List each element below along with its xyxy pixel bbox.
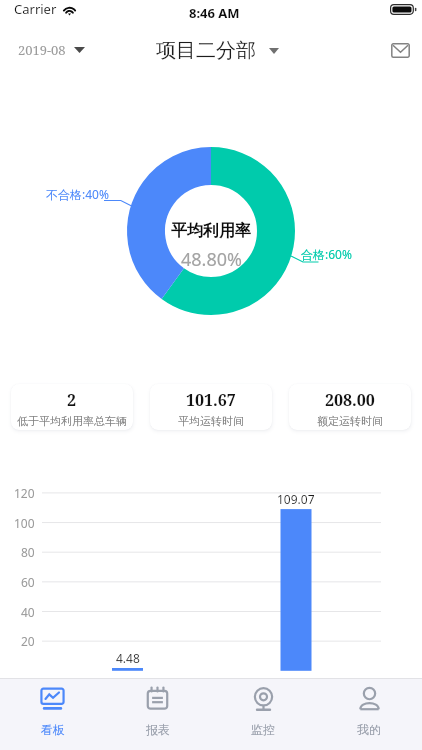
- staticText: 120: [14, 485, 35, 501]
- staticText: 8:46 AM: [189, 4, 240, 22]
- staticText: 额定运转时间: [317, 414, 383, 428]
- staticText: 101.67: [186, 389, 236, 411]
- staticText: 低于平均利用率总车辆: [17, 414, 127, 428]
- staticText: 2: [67, 389, 77, 411]
- staticText: 不合格:40%: [46, 186, 109, 202]
- button[interactable]: 报表: [105, 679, 210, 750]
- staticText: 看板: [41, 722, 65, 737]
- button[interactable]: 208.00: [289, 384, 411, 430]
- staticText: 2019-08: [18, 41, 66, 59]
- staticText: 平均利用率: [171, 221, 251, 241]
- button[interactable]: 项目二分部: [154, 32, 281, 69]
- staticText: 合格:60%: [301, 246, 352, 262]
- staticText: 40: [21, 604, 35, 620]
- staticText: 109.07: [277, 491, 315, 507]
- staticText: 我的: [357, 722, 381, 737]
- staticText: 80: [21, 544, 35, 560]
- button[interactable]: 我的: [316, 679, 422, 750]
- staticText: 平均运转时间: [178, 414, 244, 428]
- staticText: 报表: [146, 722, 170, 737]
- button[interactable]: 看板: [0, 679, 105, 750]
- staticText: 4.48: [116, 650, 140, 666]
- staticText: 208.00: [325, 389, 375, 411]
- staticText: 100: [14, 515, 35, 531]
- staticText: 48.80%: [181, 247, 242, 272]
- button[interactable]: 2019-08: [14, 32, 89, 68]
- staticText: 监控: [251, 722, 275, 737]
- staticText: 20: [21, 633, 35, 649]
- button[interactable]: Messages: [383, 33, 417, 67]
- button[interactable]: 监控: [210, 679, 316, 750]
- button[interactable]: 2: [11, 384, 133, 430]
- staticText: 项目二分部: [156, 38, 256, 63]
- staticText: 60: [21, 574, 35, 590]
- staticText: Carrier: [14, 0, 57, 18]
- button[interactable]: 101.67: [150, 384, 272, 430]
